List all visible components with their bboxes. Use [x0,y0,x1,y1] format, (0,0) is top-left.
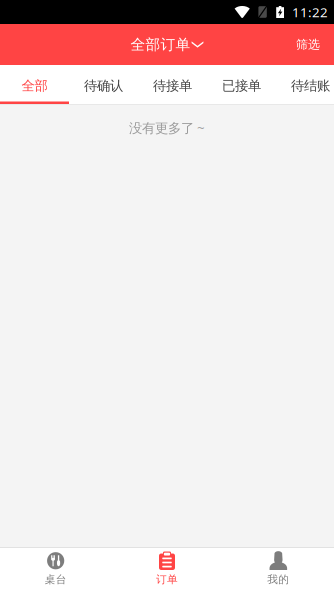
staticText: 待接单 [153,77,192,94]
staticText: 桌台 [45,573,67,586]
button[interactable]: 订单 [111,548,223,593]
staticText: 全部订单 [131,35,191,53]
button[interactable]: 待结账 [276,65,334,104]
button[interactable]: 全部订单 [121,24,213,65]
staticText: 筛选 [296,37,320,52]
button[interactable]: 已接单 [207,65,276,104]
button[interactable]: 筛选 [282,24,334,65]
button[interactable]: 桌台 [0,548,111,593]
button[interactable]: 全部 [0,65,69,104]
staticText: 全部 [21,77,47,94]
staticText: 我的 [267,573,289,586]
staticText: 待确认 [84,77,123,94]
button[interactable]: 待接单 [138,65,207,104]
staticText: 订单 [156,573,178,586]
staticText: 没有更多了 ~ [129,119,205,137]
button[interactable]: 我的 [223,548,334,593]
staticText: 待结账 [291,77,330,94]
staticText: 已接单 [222,77,261,94]
staticText: 11:22 [292,3,328,21]
button[interactable]: 待确认 [69,65,138,104]
